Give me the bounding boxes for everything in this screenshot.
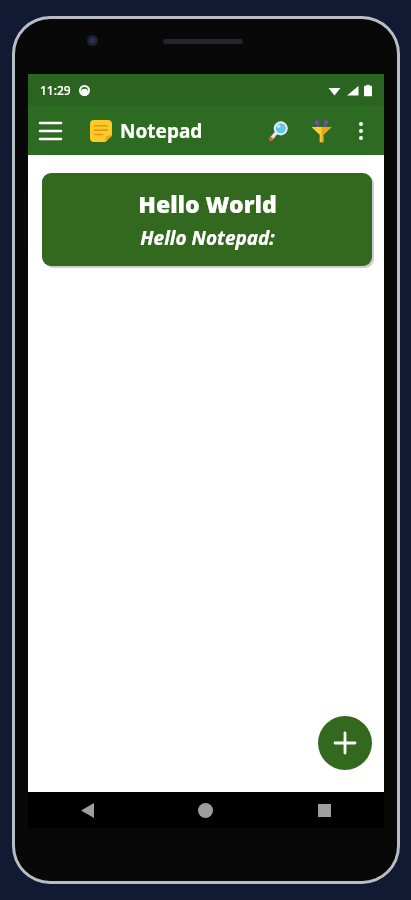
button[interactable]: Open navigation drawer xyxy=(28,109,72,153)
button[interactable]: Recent apps xyxy=(265,792,384,828)
button[interactable]: Add note xyxy=(318,716,372,770)
staticText: 11:29 xyxy=(40,82,71,98)
staticText: Hello Notepad: xyxy=(140,225,275,251)
button[interactable]: More options xyxy=(342,112,380,150)
button[interactable]: Search xyxy=(258,110,300,152)
button[interactable]: Hello World xyxy=(42,173,372,266)
staticText: Notepad xyxy=(120,118,203,144)
staticText: Hello World xyxy=(138,188,277,219)
button[interactable]: Home xyxy=(146,792,265,828)
button[interactable]: Back xyxy=(28,792,146,828)
button[interactable]: Filter notes xyxy=(300,110,342,152)
